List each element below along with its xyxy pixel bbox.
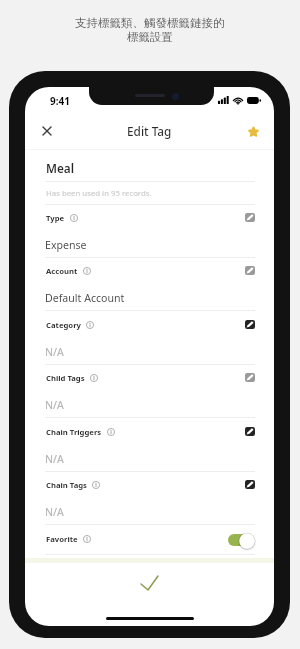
- staticText: Child Tags: [46, 373, 85, 383]
- staticText: 支持標籤類、觸發標籤鏈接的: [75, 16, 225, 30]
- button[interactable]: Account: [25, 257, 274, 311]
- button[interactable]: Confirm: [25, 563, 274, 605]
- button[interactable]: Edit: [245, 213, 255, 222]
- staticText: 9:41: [50, 94, 70, 108]
- staticText: Meal: [46, 160, 75, 176]
- staticText: Expense: [45, 238, 87, 252]
- button[interactable]: Edit: [245, 427, 255, 436]
- staticText: Category: [46, 320, 81, 330]
- staticText: 標籤設置: [127, 30, 173, 44]
- button[interactable]: Close: [35, 119, 59, 143]
- staticText: N/A: [45, 398, 64, 412]
- button[interactable]: Chain Tags: [25, 471, 274, 525]
- staticText: Chain Tags: [46, 480, 87, 490]
- button[interactable]: Edit: [245, 320, 255, 329]
- staticText: Favorite: [46, 534, 78, 544]
- staticText: Account: [46, 266, 78, 276]
- button[interactable]: Chain Triggers: [25, 418, 274, 472]
- staticText: N/A: [45, 345, 64, 359]
- staticText: N/A: [45, 452, 64, 466]
- staticText: Default Account: [45, 291, 125, 305]
- button[interactable]: Edit: [245, 266, 255, 275]
- button[interactable]: Edit: [245, 373, 255, 382]
- staticText: N/A: [45, 505, 64, 519]
- staticText: Has been used in 95 records.: [46, 188, 152, 199]
- button[interactable]: Favorite: [241, 119, 265, 143]
- button[interactable]: Category: [25, 311, 274, 365]
- staticText: Type: [46, 213, 65, 223]
- button[interactable]: Favorite: [25, 525, 274, 554]
- button[interactable]: Child Tags: [25, 364, 274, 418]
- button[interactable]: Edit: [245, 480, 255, 489]
- staticText: Edit Tag: [127, 123, 172, 139]
- staticText: Chain Triggers: [46, 427, 102, 437]
- button[interactable]: Type: [25, 204, 274, 258]
